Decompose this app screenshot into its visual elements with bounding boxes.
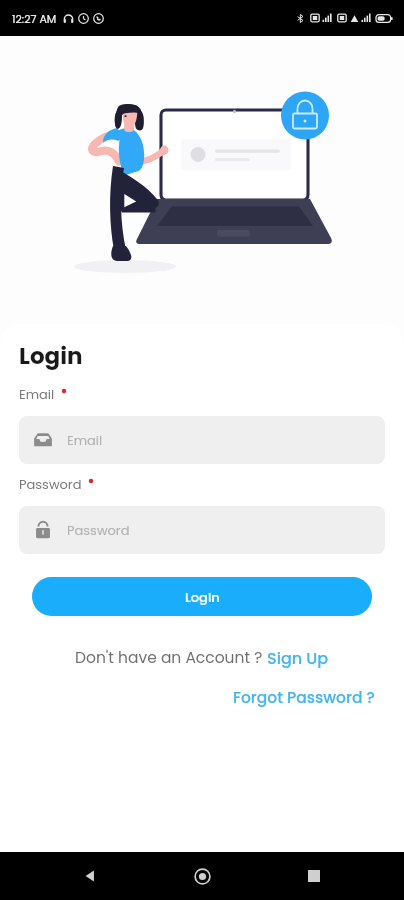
- button[interactable]: Email: [19, 416, 385, 464]
- button[interactable]: Home: [180, 854, 224, 898]
- staticText: Login: [19, 340, 83, 372]
- staticText: Email: [19, 385, 55, 403]
- button[interactable]: Back: [68, 854, 112, 898]
- staticText: 12:27 AM: [12, 11, 57, 26]
- staticText: Password: [19, 475, 82, 493]
- button[interactable]: Password: [19, 506, 385, 554]
- staticText: Email: [67, 431, 103, 449]
- staticText: Login: [185, 588, 220, 606]
- staticText: Don't have an Account ?: [75, 647, 263, 669]
- staticText: Forgot Password ?: [233, 687, 375, 709]
- button[interactable]: Sign Up: [267, 647, 329, 669]
- button[interactable]: Login: [32, 577, 372, 616]
- staticText: Sign Up: [267, 647, 329, 669]
- button[interactable]: Recents: [292, 854, 336, 898]
- button[interactable]: Forgot Password ?: [233, 687, 375, 709]
- staticText: Password: [67, 521, 130, 539]
